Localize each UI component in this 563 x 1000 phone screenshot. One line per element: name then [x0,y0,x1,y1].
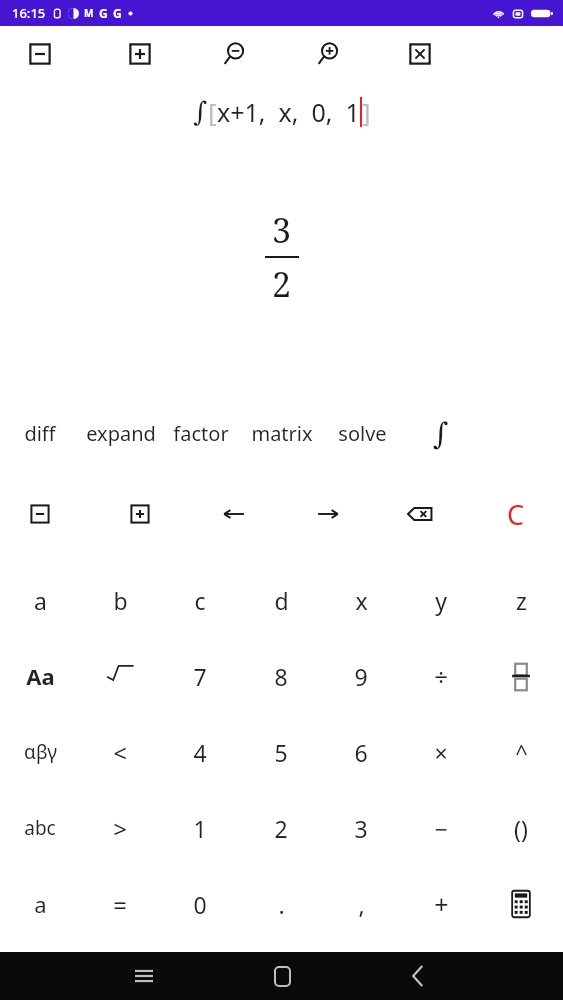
button[interactable]: Backspace [394,488,446,540]
button[interactable]: a [2,564,78,636]
button[interactable]: solve [322,405,402,461]
button[interactable]: a [2,868,78,940]
staticText: () [514,813,528,844]
staticText: ] [362,94,371,129]
button[interactable]: 0 [162,868,238,940]
button[interactable]: − [403,792,479,864]
staticText: Aa [26,661,55,691]
button[interactable]: () [483,792,559,864]
button[interactable]: 6 [323,716,399,788]
button[interactable]: b [82,564,158,636]
button[interactable]: = [82,868,158,940]
button[interactable]: toolbar icon [16,30,64,78]
staticText: z [516,585,527,616]
staticText: solve [338,420,387,447]
button[interactable]: toolbar icon [210,30,258,78]
button[interactable]: > [82,792,158,864]
button[interactable]: 7 [162,640,238,712]
button[interactable]: ÷ [403,640,479,712]
staticText: b [113,585,128,616]
button[interactable]: Move right [302,488,354,540]
staticText: C [507,496,525,533]
staticText: M [84,6,94,20]
staticText: 3 [272,207,292,253]
staticText: diff [24,420,56,447]
staticText: ÷ [434,660,448,693]
button[interactable]: Recent apps [120,952,168,1000]
button[interactable]: 8 [243,640,319,712]
staticText: < [113,736,127,769]
staticText: a [34,585,47,616]
button[interactable]: abc [2,792,78,864]
staticText: matrix [251,420,313,447]
button[interactable]: 4 [162,716,238,788]
button[interactable]: toolbar icon [396,30,444,78]
staticText: d [274,585,289,616]
button[interactable]: diff [0,405,80,461]
staticText: 2 [272,261,292,307]
button[interactable]: ^ [483,716,559,788]
staticText: 16:15 [12,4,46,22]
staticText: y [435,585,447,616]
button[interactable]: < [82,716,158,788]
staticText: a [34,889,47,919]
button[interactable]: expand [81,405,161,461]
button[interactable]: Back [394,952,442,1000]
staticText: ∫ [193,96,208,127]
staticText: 8 [274,661,288,692]
staticText: × [434,737,448,768]
button[interactable]: Calculator [483,868,559,940]
staticText: ∫ [433,416,449,451]
button[interactable]: . [243,868,319,940]
button[interactable]: 2 [243,792,319,864]
staticText: 6 [354,737,368,768]
button[interactable]: Increase [114,488,166,540]
button[interactable]: factor [161,405,241,461]
button[interactable]: Decrease [14,488,66,540]
button[interactable]: 3 [323,792,399,864]
button[interactable]: c [162,564,238,636]
button[interactable]: 1 [162,792,238,864]
button[interactable]: Home [258,952,306,1000]
button[interactable]: x [323,564,399,636]
staticText: 7 [193,661,207,692]
staticText: 3 [354,813,368,844]
staticText: 4 [193,737,207,768]
button[interactable]: C [482,488,550,540]
button[interactable]: y [403,564,479,636]
staticText: αβγ [24,739,57,765]
button[interactable]: d [243,564,319,636]
button[interactable]: Move left [208,488,260,540]
staticText: − [434,813,448,844]
button[interactable]: αβγ [2,716,78,788]
button[interactable]: Aa [2,640,78,712]
button[interactable]: toolbar icon [304,30,352,78]
button[interactable]: Fraction [483,640,559,712]
button[interactable]: 9 [323,640,399,712]
button[interactable]: , [323,868,399,940]
staticText: ^ [515,737,528,767]
staticText: + [434,887,449,921]
staticText: 2 [274,813,288,844]
staticText: expand [86,420,156,447]
staticText: factor [173,420,229,447]
button[interactable]: z [483,564,559,636]
button[interactable]: + [403,868,479,940]
staticText: . [278,889,285,920]
staticText: c [194,585,206,616]
staticText: 5 [274,737,288,768]
staticText: 0 [193,889,207,920]
button[interactable]: ∫ [407,404,475,462]
staticText: 9 [354,661,368,692]
button[interactable]: matrix [242,405,322,461]
staticText: G [113,5,122,21]
button[interactable]: × [403,716,479,788]
button[interactable]: 5 [243,716,319,788]
staticText: x [355,585,368,616]
staticText: x+1, x, 0, 1 [217,95,360,129]
button[interactable]: Square root [82,640,158,712]
staticText: , [358,889,365,920]
staticText: = [113,888,127,921]
button[interactable]: toolbar icon [116,30,164,78]
staticText: G [99,5,108,21]
